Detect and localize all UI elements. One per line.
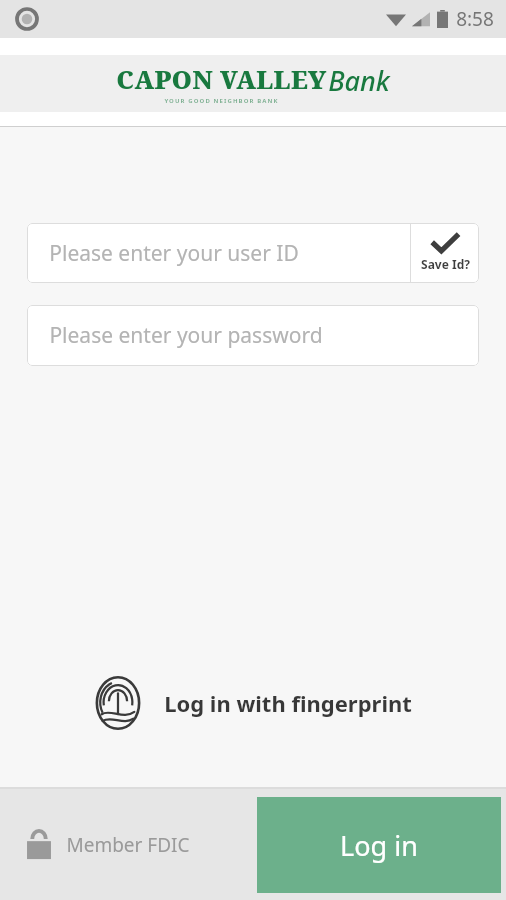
staticText: Member FDIC (66, 832, 190, 858)
button[interactable]: Please enter your user ID (27, 223, 410, 283)
staticText: YOUR GOOD NEIGHBOR BANK (164, 97, 279, 105)
staticText: 8:58 (456, 6, 494, 32)
staticText: Log in with fingerprint (164, 688, 412, 718)
staticText: Bank (328, 62, 390, 99)
button[interactable]: Please enter your password (27, 305, 479, 366)
staticText: Save Id? (421, 256, 470, 272)
staticText: Log in (340, 827, 418, 864)
staticText: CAPON VALLEY (116, 62, 327, 96)
button[interactable]: Log in (257, 797, 501, 893)
button[interactable]: Log in with fingerprint (0, 667, 506, 739)
staticText: Please enter your password (49, 321, 323, 350)
button[interactable]: Save Id (411, 223, 479, 283)
button[interactable]: Member FDIC (0, 821, 200, 869)
staticText: Please enter your user ID (49, 239, 299, 268)
